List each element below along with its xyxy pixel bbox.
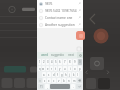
button[interactable]: c	[52, 78, 56, 83]
button[interactable]: 1	[38, 59, 41, 65]
staticText: 7	[64, 60, 66, 64]
staticText: q	[39, 67, 41, 71]
staticText: y	[59, 67, 61, 71]
staticText: z	[44, 79, 46, 83]
button[interactable]: 3	[46, 59, 49, 65]
staticText: e	[47, 67, 49, 71]
staticText: f	[57, 73, 58, 77]
button[interactable]: p	[78, 66, 82, 71]
staticText: x	[48, 79, 50, 83]
button[interactable]: v	[57, 78, 61, 83]
button[interactable]: .	[71, 84, 75, 89]
button[interactable]: 9876 5432 1098 7654	[37, 7, 83, 14]
staticText: 3	[47, 60, 49, 64]
button[interactable]: o	[73, 66, 77, 71]
staticText: suggestion	[51, 53, 64, 57]
button[interactable]: r	[50, 66, 53, 71]
staticText: next	[68, 53, 74, 57]
button[interactable]: a	[42, 72, 46, 77]
staticText: o	[74, 67, 76, 71]
staticText: d	[53, 73, 55, 77]
button[interactable]: u	[63, 66, 67, 71]
button[interactable]: Space	[50, 84, 70, 89]
staticText: k	[73, 73, 75, 77]
button[interactable]: h	[64, 72, 67, 77]
staticText: t	[55, 67, 56, 71]
button[interactable]: 8	[68, 59, 72, 65]
button[interactable]: Shift	[38, 78, 42, 83]
button[interactable]: Enter	[76, 84, 82, 89]
staticText: s	[48, 73, 50, 77]
button[interactable]: word	[37, 52, 51, 58]
staticText: b	[63, 79, 65, 83]
button[interactable]: Another suggestion	[37, 21, 83, 28]
staticText: p	[79, 67, 81, 71]
button[interactable]: ,	[45, 84, 49, 89]
button[interactable]: suggestion	[51, 52, 64, 58]
button[interactable]: 0	[78, 59, 82, 65]
staticText: 1	[39, 60, 41, 64]
button[interactable]: 4	[50, 59, 53, 65]
staticText: word	[41, 53, 48, 57]
button[interactable]: 2	[42, 59, 45, 65]
button[interactable]: Backspace	[77, 78, 82, 83]
button[interactable]: m	[72, 78, 76, 83]
staticText: ?1	[40, 85, 43, 89]
staticText: a	[43, 73, 45, 77]
button[interactable]: x	[47, 78, 51, 83]
staticText: 0	[79, 60, 81, 64]
staticText: .	[73, 85, 74, 89]
button[interactable]: g	[60, 72, 63, 77]
button[interactable]: s	[47, 72, 51, 77]
staticText: m	[73, 79, 76, 83]
button[interactable]: Keyboard settings	[77, 52, 83, 58]
button[interactable]: l	[76, 72, 79, 77]
staticText: Another suggestion	[45, 23, 78, 27]
staticText: u	[64, 67, 66, 71]
button[interactable]: d	[52, 72, 55, 77]
button[interactable]: j	[68, 72, 71, 77]
staticText: 4	[51, 60, 53, 64]
button[interactable]: w	[42, 66, 45, 71]
staticText: n	[68, 79, 70, 83]
button[interactable]: 9	[73, 59, 77, 65]
button[interactable]: b	[62, 78, 66, 83]
button[interactable]: 7	[63, 59, 67, 65]
staticText: 5	[55, 60, 57, 64]
button[interactable]: f	[56, 72, 59, 77]
staticText: h	[65, 73, 67, 77]
staticText: 8	[69, 60, 71, 64]
button[interactable]: 6	[58, 59, 62, 65]
staticText: 6	[59, 60, 61, 64]
button[interactable]: ?1	[38, 84, 44, 89]
staticText: 9876	[45, 2, 78, 6]
button[interactable]: i	[68, 66, 72, 71]
button[interactable]: Contact name one	[37, 14, 83, 21]
button[interactable]: t	[54, 66, 57, 71]
staticText: c	[53, 79, 55, 83]
staticText: l	[77, 73, 78, 77]
button[interactable]: k	[72, 72, 75, 77]
button[interactable]: z	[43, 78, 46, 83]
button[interactable]: e	[46, 66, 49, 71]
staticText: v	[58, 79, 60, 83]
staticText: 9	[74, 60, 76, 64]
staticText: r	[51, 67, 53, 71]
button[interactable]: y	[58, 66, 62, 71]
staticText: w	[42, 67, 45, 71]
button[interactable]: 5	[54, 59, 57, 65]
button[interactable]: n	[67, 78, 71, 83]
button[interactable]: 9876	[37, 0, 83, 7]
button[interactable]: q	[38, 66, 41, 71]
staticText: 9876 5432 1098 7654	[45, 9, 78, 13]
staticText: g	[61, 73, 63, 77]
staticText: i	[70, 67, 71, 71]
staticText: ,	[47, 85, 48, 89]
staticText: 2	[43, 60, 45, 64]
staticText: Contact name one	[45, 16, 78, 20]
button[interactable]: Compose	[76, 31, 85, 40]
staticText: j	[69, 73, 70, 77]
button[interactable]: next	[64, 52, 77, 58]
